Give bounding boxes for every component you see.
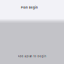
- staticText: Add a plan to begin: [17, 55, 46, 58]
- button[interactable]: Add a plan to begin: [17, 55, 46, 58]
- staticText: Plan Begin: [21, 6, 38, 9]
